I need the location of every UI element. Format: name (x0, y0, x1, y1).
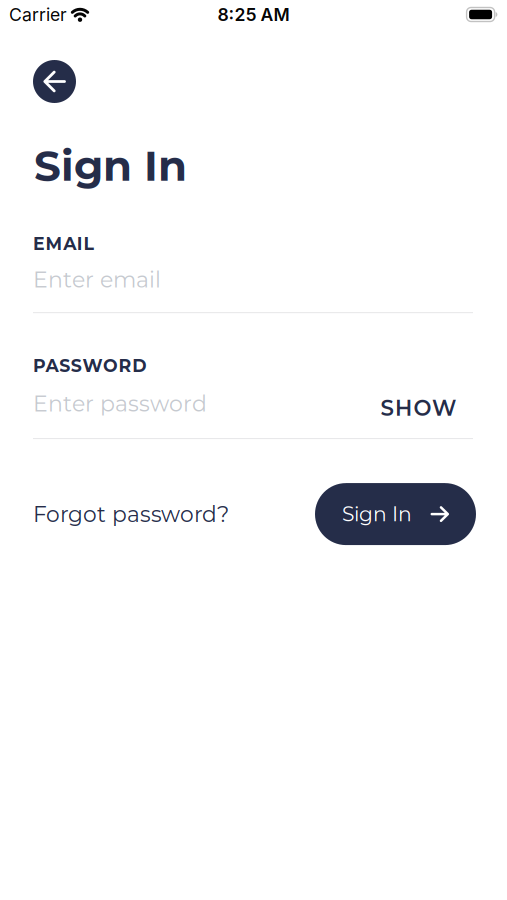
staticText: 8:25 AM (217, 4, 289, 25)
staticText: Sign In (342, 502, 412, 526)
button[interactable]: Sign In (315, 483, 476, 545)
staticText: SHOW (380, 395, 456, 421)
staticText: PASSWORD (33, 355, 146, 376)
staticText: Sign In (34, 140, 187, 191)
button[interactable]: Back (33, 60, 76, 103)
button[interactable]: SHOW (380, 391, 456, 417)
staticText: Forgot password? (33, 501, 229, 527)
staticText: Enter email (33, 266, 161, 293)
staticText: Carrier (9, 4, 67, 25)
staticText: Enter password (33, 390, 207, 417)
staticText: EMAIL (33, 233, 93, 254)
button[interactable]: Forgot password? (33, 501, 229, 527)
